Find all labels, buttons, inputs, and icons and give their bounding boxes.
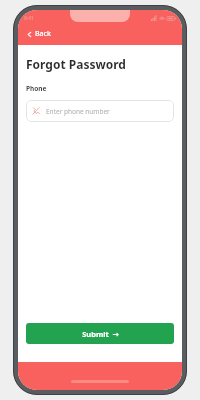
button[interactable]: Back [23, 27, 54, 41]
staticText: Phone [26, 84, 47, 93]
button[interactable]: Phone [26, 100, 174, 122]
other: Phone [32, 107, 40, 115]
staticText: Forgot Password [26, 56, 126, 72]
staticText: Submit → [82, 329, 119, 339]
button[interactable]: Submit → [26, 323, 174, 344]
staticText: Enter phone number [46, 107, 110, 116]
staticText: Back [35, 29, 51, 39]
staticText: 9:41 [24, 15, 34, 22]
